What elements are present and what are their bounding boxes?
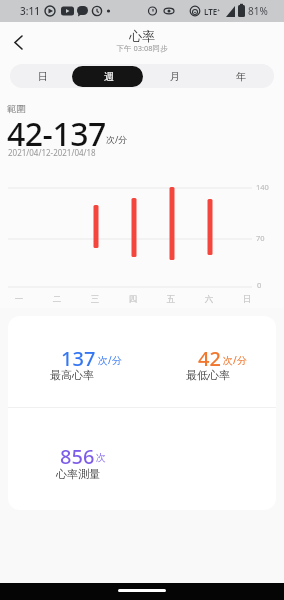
staticText: 週 xyxy=(104,70,114,83)
staticText: 日 xyxy=(38,70,48,83)
staticText: 次/分 xyxy=(98,353,122,367)
staticText: 42-137 xyxy=(7,112,106,156)
staticText: 心率 xyxy=(0,28,284,44)
button[interactable]: 日 xyxy=(10,64,76,88)
button[interactable]: 856 xyxy=(38,434,148,502)
button[interactable]: 42 xyxy=(178,336,276,404)
button[interactable]: 137 xyxy=(38,336,148,404)
staticText: 六 xyxy=(199,294,219,305)
staticText: 四 xyxy=(123,294,143,305)
staticText: 日 xyxy=(237,294,257,305)
button[interactable]: 月 xyxy=(142,64,208,88)
staticText: 五 xyxy=(161,294,181,305)
staticText: 心率測量 xyxy=(56,467,100,481)
staticText: 一 xyxy=(9,294,29,305)
staticText: 最高心率 xyxy=(50,368,94,382)
staticText: 最低心率 xyxy=(186,368,230,382)
staticText: 0 xyxy=(257,280,262,290)
staticText: 3:11 xyxy=(20,4,40,18)
staticText: LTE⁺ xyxy=(204,6,221,17)
staticText: 137 xyxy=(61,345,96,372)
button[interactable] xyxy=(6,30,30,54)
staticText: 856 xyxy=(60,443,95,470)
staticText: 42 xyxy=(198,345,221,372)
staticText: 下午 03:08同步 xyxy=(0,43,284,53)
button[interactable]: 年 xyxy=(208,64,274,88)
staticText: 三 xyxy=(85,294,105,305)
button[interactable]: 週 xyxy=(76,64,142,88)
staticText: 次 xyxy=(96,451,106,464)
staticText: 140 xyxy=(256,182,269,192)
staticText: 月 xyxy=(170,70,180,83)
staticText: 二 xyxy=(47,294,67,305)
staticText: 年 xyxy=(236,70,246,83)
staticText: 範圍 xyxy=(7,103,26,115)
staticText: 次/分 xyxy=(223,353,247,367)
staticText: 70 xyxy=(256,233,265,243)
staticText: 2021/04/12-2021/04/18 xyxy=(8,147,96,158)
staticText: 次/分 xyxy=(106,133,128,145)
staticText: 81% xyxy=(248,4,268,18)
